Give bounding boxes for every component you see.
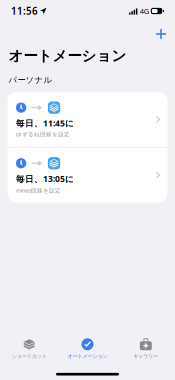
staticText: オートメーション — [67, 353, 107, 359]
staticText: ショートカット — [12, 353, 47, 359]
staticText: mineo回線を設定 — [16, 186, 61, 194]
staticText: ギャラリー — [133, 353, 158, 359]
staticText: 毎日、11:45に — [16, 117, 74, 129]
staticText: 毎日、13:05に — [16, 173, 74, 184]
staticText: オートメーション — [8, 47, 126, 65]
button[interactable]: 毎日、13:05に — [7, 148, 167, 203]
staticText: パーソナル — [8, 75, 52, 85]
button[interactable]: オートメーション — [58, 338, 117, 359]
staticText: 11:56 — [11, 4, 38, 18]
button[interactable]: 新規オートメーション — [151, 24, 171, 44]
staticText: ゆずるね回線を設定 — [16, 131, 70, 138]
button[interactable]: ショートカット — [0, 338, 58, 359]
staticText: 4G — [140, 6, 149, 16]
button[interactable]: 毎日、11:45に — [7, 92, 167, 147]
button[interactable]: ギャラリー — [117, 338, 175, 359]
